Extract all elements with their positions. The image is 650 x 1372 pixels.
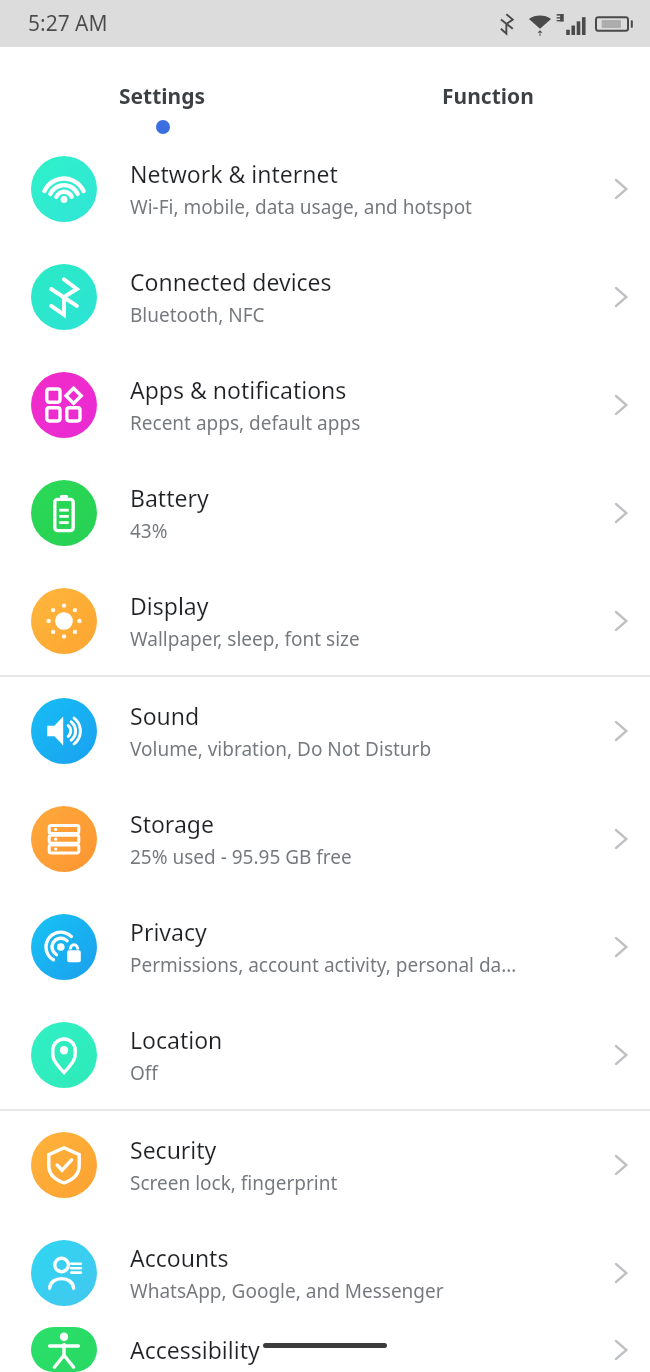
staticText: Screen lock, fingerprint: [130, 1170, 338, 1196]
staticText: WhatsApp, Google, and Messenger: [130, 1278, 444, 1304]
button[interactable]: Location: [0, 1001, 650, 1109]
button[interactable]: Storage: [0, 785, 650, 893]
staticText: Wi-Fi, mobile, data usage, and hotspot: [130, 194, 472, 220]
button[interactable]: Display: [0, 567, 650, 675]
staticText: Wallpaper, sleep, font size: [130, 626, 360, 652]
staticText: Accounts: [130, 1242, 229, 1273]
staticText: Security: [130, 1134, 217, 1165]
staticText: Volume, vibration, Do Not Disturb: [130, 736, 432, 762]
staticText: Accessibility: [130, 1334, 260, 1365]
button[interactable]: Accessibility: [0, 1327, 650, 1372]
button[interactable]: Accounts: [0, 1219, 650, 1327]
staticText: Network & internet: [130, 158, 338, 189]
button[interactable]: Apps & notifications: [0, 351, 650, 459]
staticText: Sound: [130, 700, 200, 731]
staticText: 25% used - 95.95 GB free: [130, 844, 352, 870]
staticText: Off: [130, 1060, 158, 1086]
button[interactable]: Network & internet: [0, 135, 650, 243]
button[interactable]: Battery: [0, 459, 650, 567]
staticText: Storage: [130, 808, 214, 839]
button[interactable]: Settings: [0, 47, 325, 135]
staticText: Battery: [130, 482, 209, 513]
staticText: Settings: [119, 82, 206, 111]
button[interactable]: Security: [0, 1111, 650, 1219]
staticText: Location: [130, 1024, 223, 1055]
staticText: Permissions, account activity, personal …: [130, 952, 517, 978]
staticText: 43%: [130, 518, 168, 544]
staticText: 5:27 AM: [28, 9, 108, 38]
button[interactable]: Sound: [0, 677, 650, 785]
staticText: Apps & notifications: [130, 374, 347, 405]
staticText: Privacy: [130, 916, 207, 947]
staticText: Recent apps, default apps: [130, 410, 361, 436]
staticText: Bluetooth, NFC: [130, 302, 265, 328]
other: Home gesture bar: [263, 1343, 387, 1348]
button[interactable]: Privacy: [0, 893, 650, 1001]
staticText: Function: [442, 82, 534, 111]
staticText: Connected devices: [130, 266, 332, 297]
staticText: Display: [130, 590, 209, 621]
button[interactable]: Function: [325, 47, 650, 135]
button[interactable]: Connected devices: [0, 243, 650, 351]
